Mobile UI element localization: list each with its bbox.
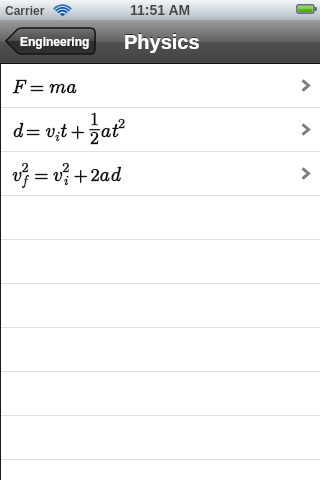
staticText: Engineering: [20, 35, 90, 48]
staticText: 11:51 AM: [130, 2, 191, 18]
button[interactable]: F equals m a: [0, 64, 320, 108]
other: Wi-Fi signal: [54, 4, 71, 16]
button[interactable]: Engineering: [5, 27, 96, 55]
button[interactable]: d equals v i t plus one half a t squared: [0, 108, 320, 152]
staticText: Physics: [124, 31, 200, 53]
staticText: Physics: [124, 30, 200, 52]
staticText: Carrier: [5, 4, 45, 17]
button[interactable]: v f squared equals v i squared plus 2 a …: [0, 152, 320, 196]
